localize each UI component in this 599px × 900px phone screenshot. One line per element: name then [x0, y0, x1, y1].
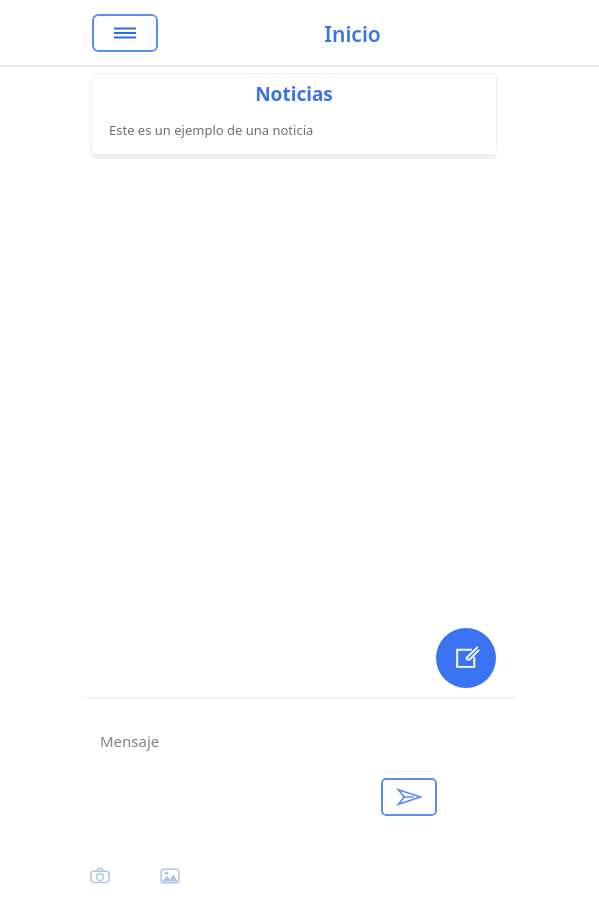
staticText: Inicio [280, 20, 425, 49]
staticText: Este es un ejemplo de una noticia [109, 121, 314, 139]
button[interactable]: Attach image [154, 860, 186, 892]
staticText: Mensaje [100, 731, 160, 751]
button[interactable]: Noticias [91, 73, 497, 155]
staticText: Noticias [91, 81, 497, 107]
button[interactable]: Mensaje [82, 715, 517, 767]
button[interactable]: Take photo [84, 860, 116, 892]
button[interactable]: Open navigation menu [92, 14, 158, 52]
button[interactable]: Send [381, 778, 437, 816]
button[interactable]: Compose new message [436, 628, 496, 688]
